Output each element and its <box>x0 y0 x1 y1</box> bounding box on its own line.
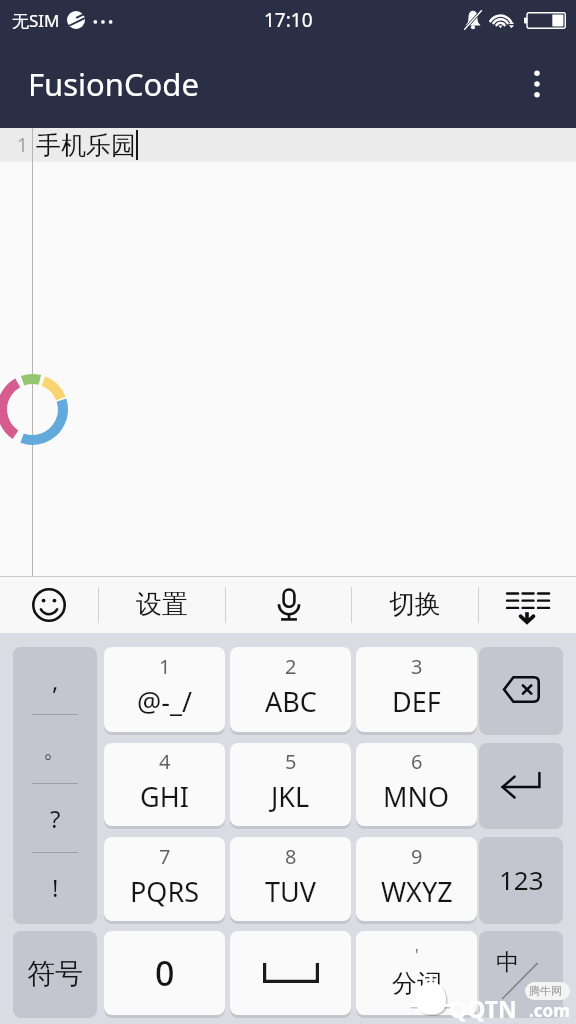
button[interactable]: 5 <box>230 743 351 826</box>
staticText: 5 <box>285 748 297 775</box>
button[interactable]: Punctuation <box>13 647 97 921</box>
button[interactable]: Hide keyboard <box>479 576 575 633</box>
staticText: FusionCode <box>28 63 199 105</box>
staticText: 9 <box>411 843 423 870</box>
staticText: ABC <box>265 683 317 720</box>
staticText: 4 <box>159 748 171 775</box>
button[interactable]: 设置 <box>99 576 225 633</box>
staticText: 设置 <box>136 588 188 621</box>
button[interactable]: 4 <box>104 743 225 826</box>
staticText: ! <box>52 871 59 904</box>
button[interactable]: Enter <box>479 743 563 826</box>
button[interactable]: 8 <box>230 837 351 921</box>
staticText: ? <box>50 802 61 835</box>
staticText: 2 <box>285 653 297 680</box>
staticText: 17:10 <box>264 7 313 33</box>
button[interactable]: 7 <box>104 837 225 921</box>
staticText: PQRS <box>130 873 200 910</box>
staticText: 0 <box>155 950 175 996</box>
staticText: ' <box>415 944 419 966</box>
staticText: 123 <box>499 862 544 897</box>
button[interactable]: 6 <box>356 743 477 826</box>
staticText: 8 <box>285 843 297 870</box>
staticText: 中 <box>496 948 519 977</box>
button[interactable]: Backspace <box>479 647 563 732</box>
button[interactable]: 2 <box>230 647 351 732</box>
staticText: 7 <box>159 843 171 870</box>
staticText: WXYZ <box>381 873 453 910</box>
button[interactable]: Voice input <box>226 576 351 633</box>
button[interactable]: 1 <box>104 647 225 732</box>
staticText: MNO <box>383 778 450 815</box>
button[interactable]: 符号 <box>13 931 97 1015</box>
staticText: 1 <box>17 132 28 158</box>
staticText: GHI <box>140 778 189 815</box>
staticText: 腾牛网 <box>529 984 562 998</box>
button[interactable]: Space <box>230 931 351 1015</box>
staticText: JKL <box>271 778 310 815</box>
staticText: 英 <box>526 981 539 997</box>
button[interactable]: 3 <box>356 647 477 732</box>
button[interactable]: 0 <box>104 931 225 1015</box>
staticText: DEF <box>392 683 441 720</box>
button[interactable]: 123 <box>479 837 563 921</box>
staticText: 6 <box>411 748 423 775</box>
staticText: 切换 <box>389 588 441 621</box>
button[interactable]: Emoji <box>0 576 98 633</box>
staticText: TUV <box>265 873 316 910</box>
staticText: 3 <box>411 653 423 680</box>
staticText: 1 <box>159 653 171 680</box>
staticText: 。 <box>43 734 67 764</box>
staticText: @-_/ <box>137 683 192 720</box>
staticText: , <box>52 664 59 697</box>
staticText: 分词 <box>392 968 442 999</box>
staticText: QQTN <box>449 993 517 1024</box>
staticText: 符号 <box>27 956 83 991</box>
button[interactable]: 9 <box>356 837 477 921</box>
staticText: .com <box>529 999 570 1022</box>
staticText: 手机乐园 <box>36 130 136 161</box>
button[interactable]: More options <box>512 59 562 109</box>
staticText: 无SIM <box>12 9 60 32</box>
button[interactable]: 切换 <box>352 576 478 633</box>
button[interactable]: Switch input language <box>479 931 563 1015</box>
button[interactable]: ' <box>356 931 477 1015</box>
